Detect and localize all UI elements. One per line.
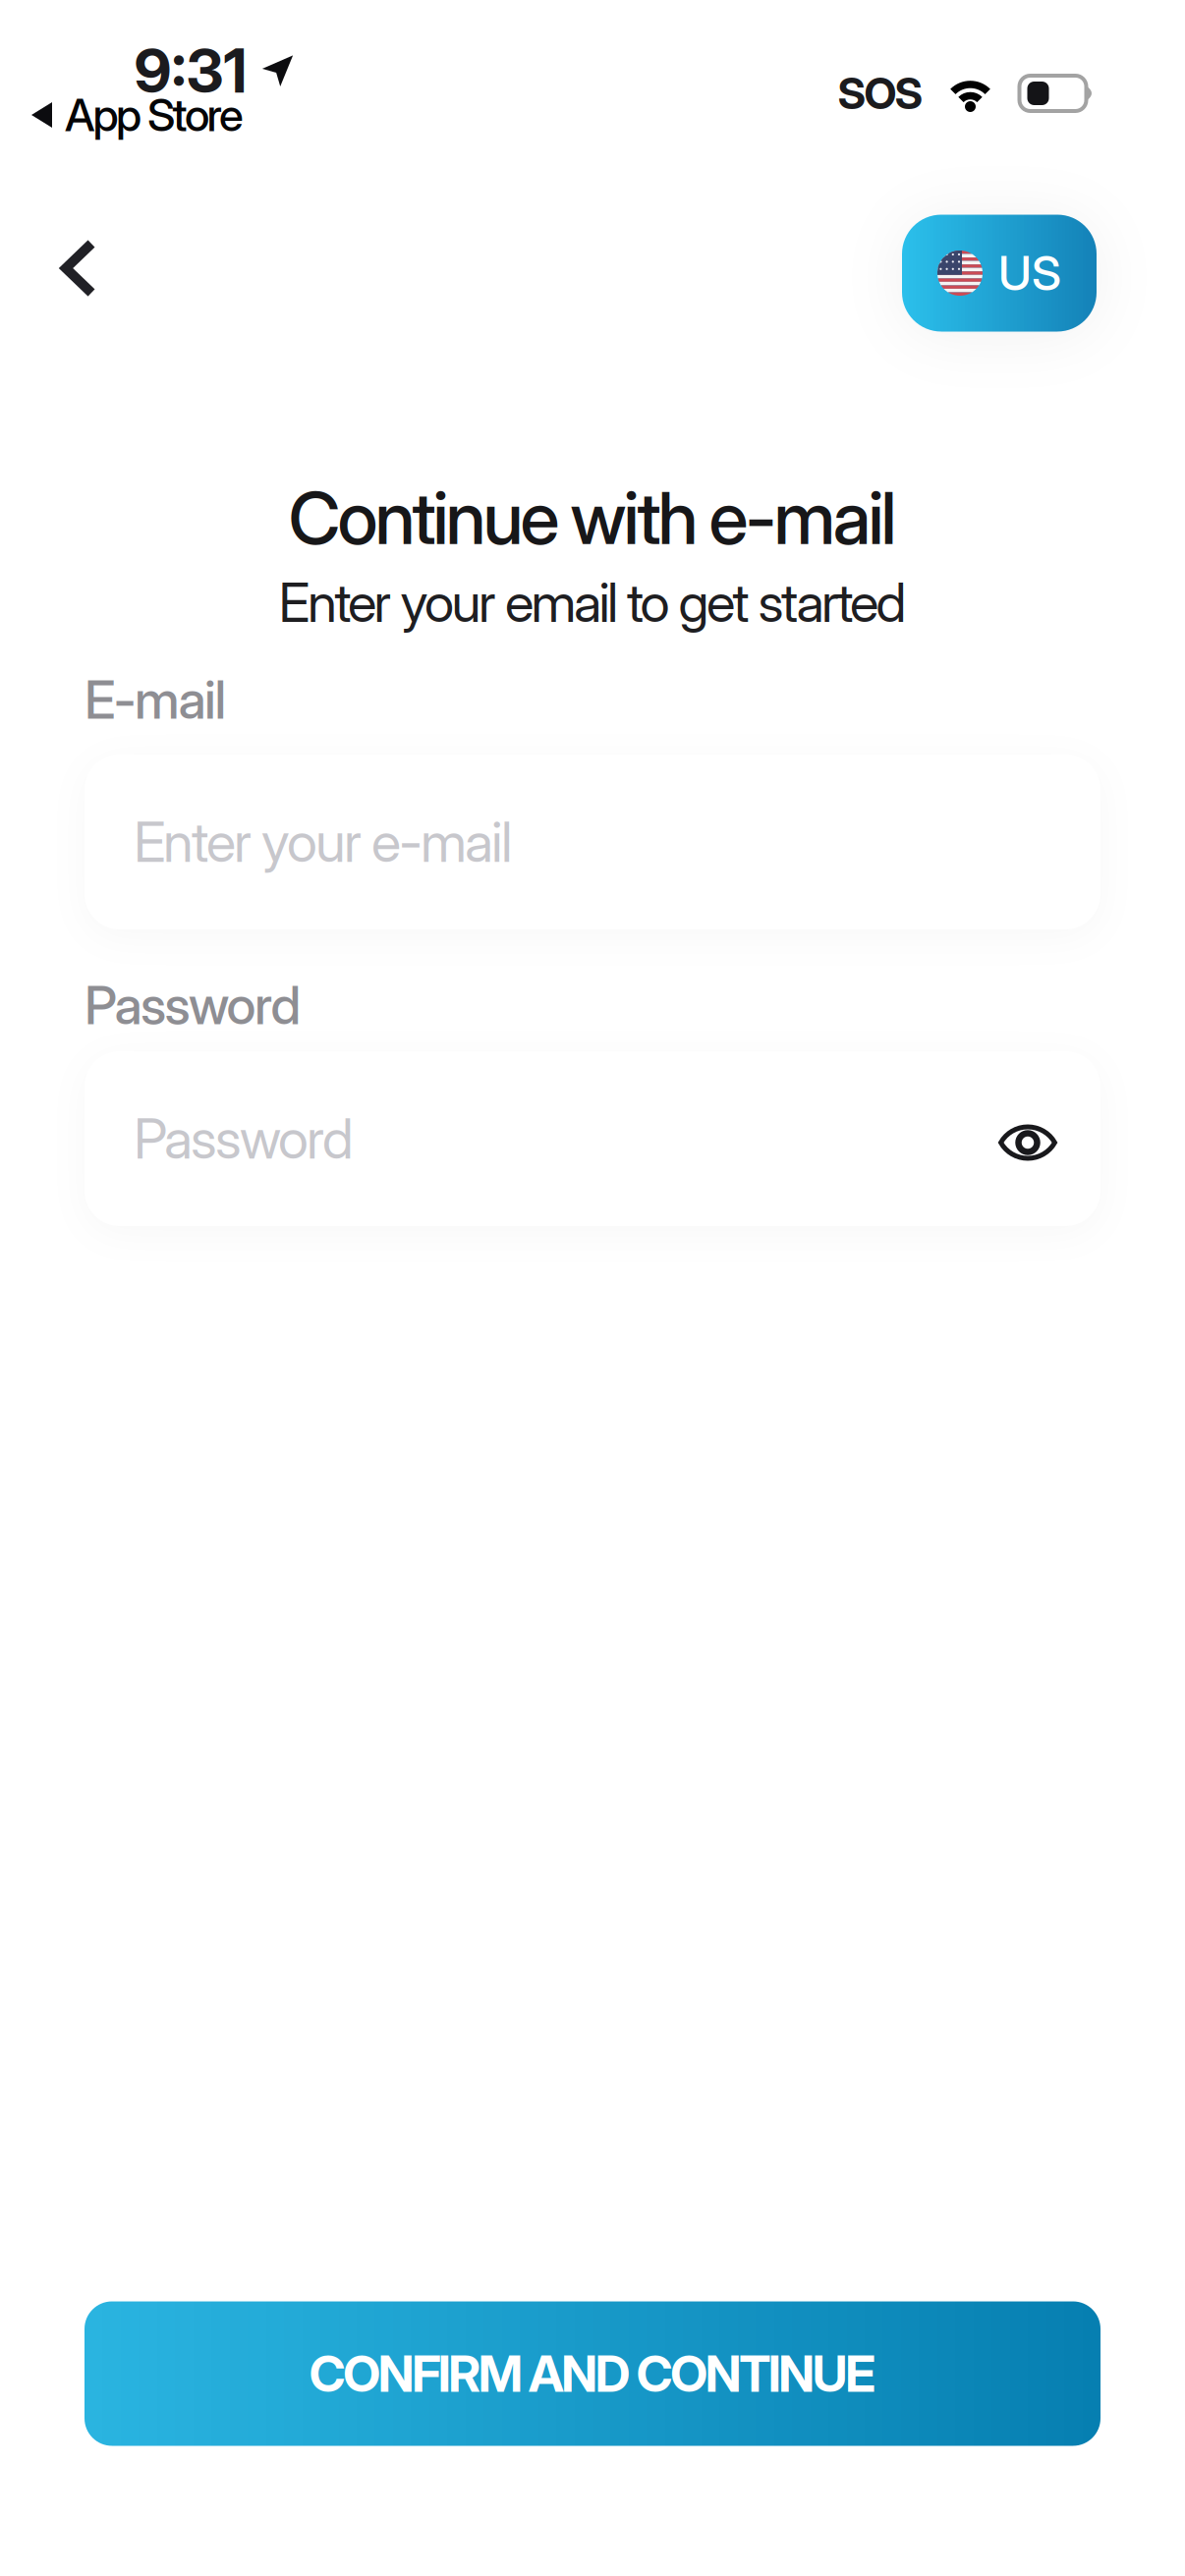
button[interactable]: Back xyxy=(49,229,108,308)
button[interactable]: Password xyxy=(85,1051,1100,1226)
staticText: Password xyxy=(85,974,301,1036)
staticText: 9:31 xyxy=(134,35,247,106)
staticText: US xyxy=(998,245,1061,301)
button[interactable]: Country: US xyxy=(902,215,1097,332)
button[interactable]: Enter your e-mail xyxy=(85,755,1100,929)
staticText: App Store xyxy=(65,89,244,141)
staticText: E-mail xyxy=(85,669,226,730)
staticText: CONFIRM AND CONTINUE xyxy=(309,2344,876,2403)
button[interactable]: CONFIRM AND CONTINUE xyxy=(85,2301,1100,2446)
button[interactable]: Show password xyxy=(998,1123,1057,1162)
staticText: Enter your e-mail xyxy=(134,810,513,874)
staticText: Password xyxy=(134,1106,354,1171)
staticText: Continue with e-mail xyxy=(288,475,897,560)
staticText: SOS xyxy=(838,68,923,119)
staticText: Enter your email to get started xyxy=(279,571,906,634)
